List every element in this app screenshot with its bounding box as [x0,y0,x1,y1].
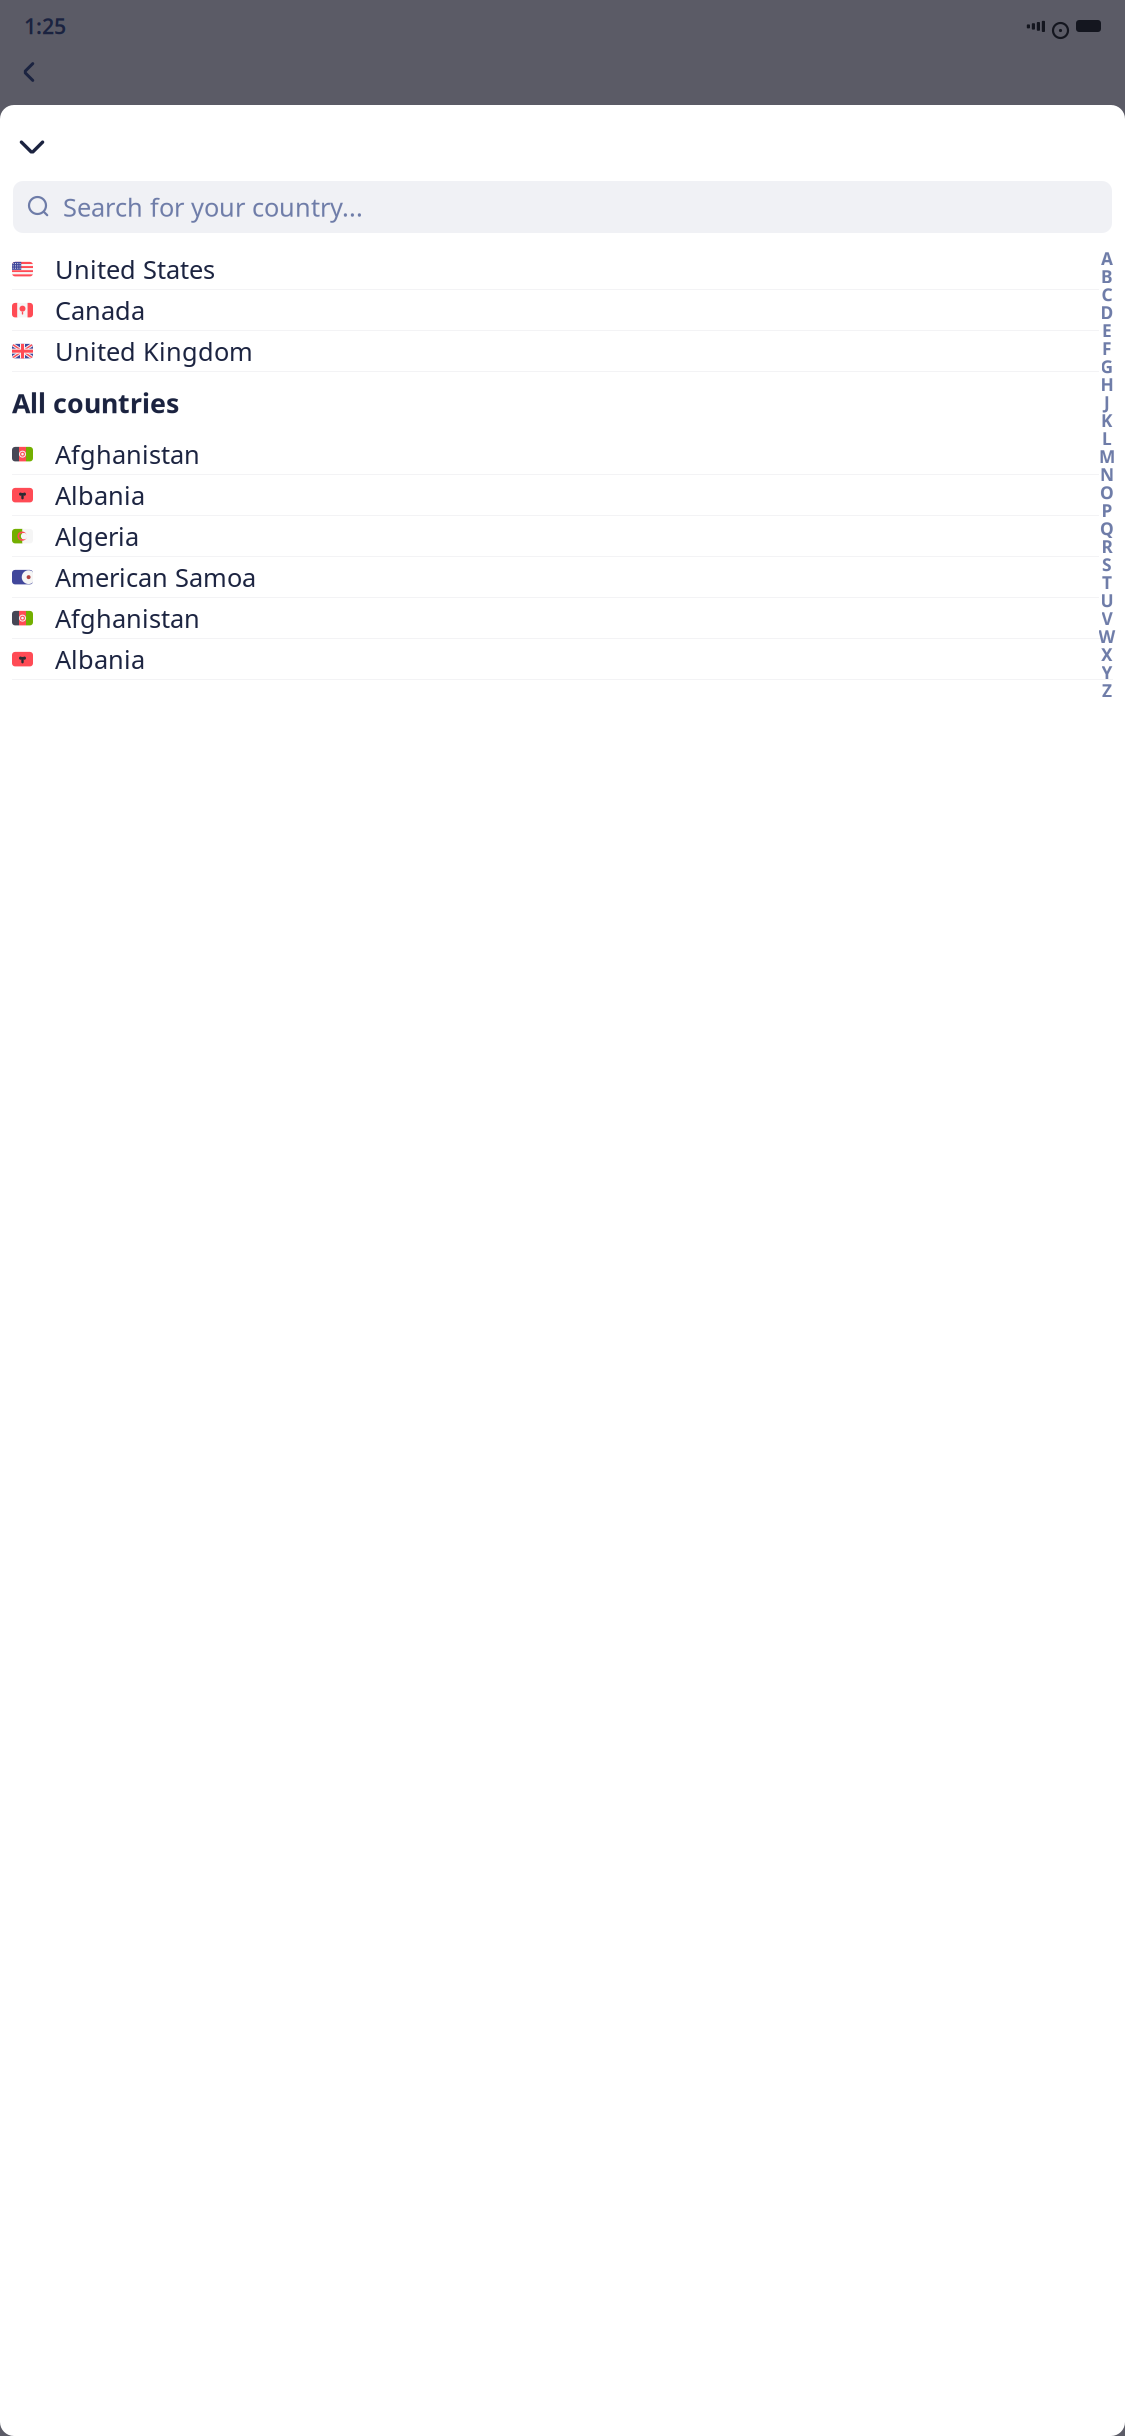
staticText: Canada [55,293,145,327]
staticText: W [1098,625,1115,648]
staticText: P [1101,499,1112,522]
button[interactable]: Albania [0,639,1125,680]
staticText: Afghanistan [55,601,200,635]
button[interactable]: N [1097,468,1117,481]
button[interactable]: M [1097,450,1117,463]
staticText: O [1100,481,1114,504]
button[interactable]: Back [7,50,51,94]
button[interactable]: Algeria [0,516,1125,557]
button[interactable]: D [1097,306,1117,319]
button[interactable]: P [1097,504,1117,517]
staticText: Search for your country... [63,190,363,224]
staticText: United States [55,252,215,286]
button[interactable]: B [1097,270,1117,283]
staticText: Y [1101,661,1112,684]
button[interactable]: L [1097,432,1117,445]
button[interactable]: Afghanistan [0,598,1125,639]
button[interactable]: V [1097,612,1117,625]
button[interactable]: Z [1097,684,1117,697]
button[interactable]: U [1097,594,1117,607]
staticText: S [1102,553,1112,576]
button[interactable]: Y [1097,666,1117,679]
button[interactable]: C [1097,288,1117,301]
staticText: D [1100,301,1113,324]
staticText: F [1102,337,1112,360]
staticText: Z [1102,679,1112,702]
staticText: X [1101,643,1113,666]
button[interactable]: Canada [0,290,1125,331]
staticText: U [1100,589,1113,612]
button[interactable]: K [1097,414,1117,427]
staticText: T [1102,571,1112,594]
staticText: G [1100,355,1113,378]
staticText: C [1101,283,1112,306]
button[interactable]: O [1097,486,1117,499]
button[interactable]: Dismiss [8,125,56,169]
staticText: Albania [55,642,145,676]
staticText: 1:25 [24,12,66,40]
staticText: Afghanistan [55,437,200,471]
button[interactable]: T [1097,576,1117,589]
button[interactable]: United States [0,249,1125,290]
button[interactable]: X [1097,648,1117,661]
button[interactable]: E [1097,324,1117,337]
staticText: B [1101,265,1113,288]
staticText: Algeria [55,519,139,553]
staticText: All countries [12,385,179,421]
staticText: H [1100,373,1113,396]
staticText: American Samoa [55,560,256,594]
staticText: K [1101,409,1113,432]
staticText: R [1101,535,1112,558]
staticText: N [1100,463,1114,486]
button[interactable]: R [1097,540,1117,553]
staticText: J [1104,391,1110,414]
staticText: L [1102,427,1112,450]
button[interactable]: Afghanistan [0,434,1125,475]
button[interactable]: A [1097,252,1117,265]
button[interactable]: American Samoa [0,557,1125,598]
button[interactable]: G [1097,360,1117,373]
button[interactable]: United Kingdom [0,331,1125,372]
button[interactable]: Search for your country... [13,181,1112,233]
staticText: Q [1100,517,1114,540]
button[interactable]: J [1097,396,1117,409]
staticText: United Kingdom [55,334,253,368]
button[interactable]: S [1097,558,1117,571]
button[interactable]: W [1097,630,1117,643]
button[interactable]: F [1097,342,1117,355]
button[interactable]: Q [1097,522,1117,535]
staticText: V [1101,607,1112,630]
staticText: A [1101,247,1113,270]
staticText: M [1099,445,1115,468]
staticText: E [1102,319,1112,342]
staticText: Albania [55,478,145,512]
button[interactable]: H [1097,378,1117,391]
button[interactable]: Albania [0,475,1125,516]
